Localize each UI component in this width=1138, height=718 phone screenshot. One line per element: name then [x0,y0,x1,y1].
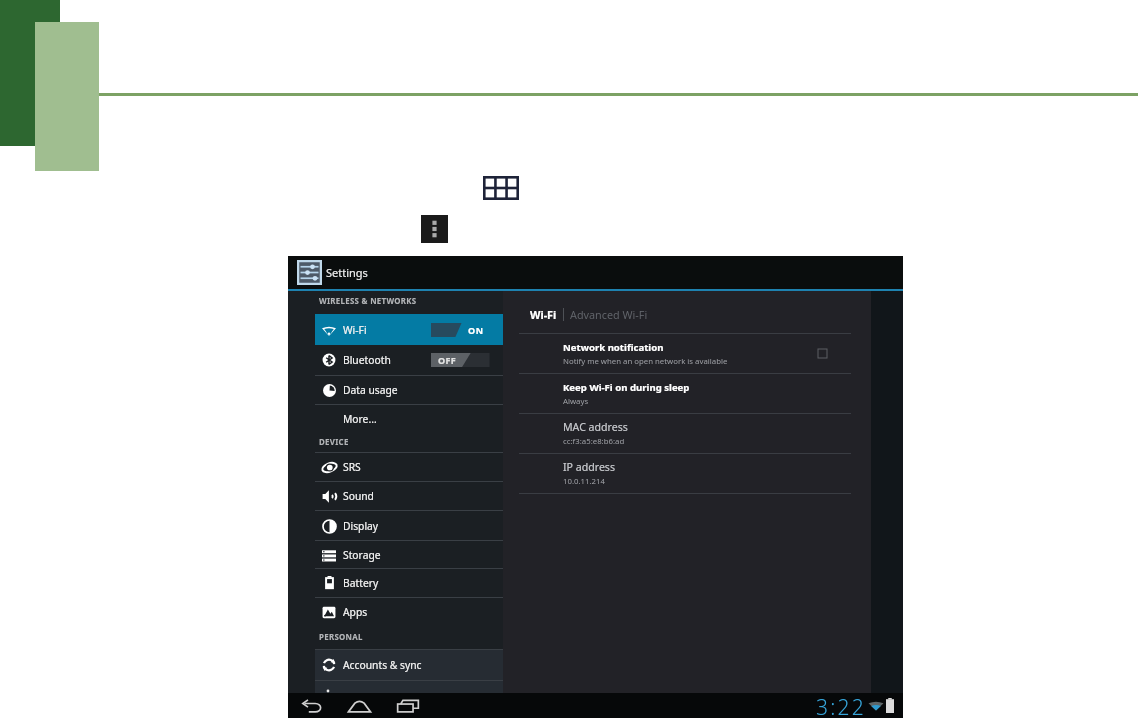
button[interactable]: Accounts & sync [315,650,503,680]
staticText: WIRELESS & NETWORKS [319,296,417,307]
button[interactable]: Display [315,511,503,540]
staticText: More... [343,412,377,426]
button[interactable]: Data usage [315,376,503,404]
staticText: ON [468,324,484,336]
staticText: cc:f3:a5:e8:b6:ad [563,436,625,447]
staticText: 10.0.11.214 [563,476,605,487]
staticText: Storage [343,548,381,562]
staticText: DEVICE [319,437,349,448]
staticText: SRS [343,460,361,474]
staticText: Wi-Fi [343,323,367,337]
button[interactable]: More options [421,215,448,243]
staticText: IP address [563,460,616,474]
staticText: Battery [343,576,379,590]
staticText: Always [563,396,589,407]
button[interactable]: Settings [297,260,322,285]
button[interactable]: SRS [315,453,503,481]
staticText: MAC address [563,420,628,434]
staticText: Bluetooth [343,353,391,367]
staticText: PERSONAL [319,632,363,643]
staticText: Advanced Wi-Fi [570,307,648,322]
button[interactable]: Network notification [503,334,871,373]
staticText: Display [343,519,379,533]
button[interactable]: Recent apps [396,696,419,716]
button[interactable]: Storage [315,541,503,568]
button[interactable]: Battery [315,569,503,597]
staticText: Sound [343,489,374,503]
staticText: Settings [326,265,368,280]
button[interactable]: IP address [503,454,871,493]
staticText: Notify me when an open network is availa… [563,356,728,367]
button[interactable]: Apps grid [483,176,519,200]
button[interactable]: Sound [315,482,503,510]
staticText: 3:22 [816,693,866,718]
button[interactable]: Keep Wi-Fi on during sleep [503,374,871,413]
staticText: OFF [438,354,457,366]
button[interactable]: Back [301,696,323,716]
staticText: Accounts & sync [343,658,422,672]
button[interactable]: Bluetooth [315,345,503,375]
staticText: Data usage [343,383,398,397]
button[interactable]: Apps [315,598,503,626]
staticText: Keep Wi-Fi on during sleep [563,381,690,394]
button[interactable]: Home [347,696,371,716]
button[interactable]: Wi-Fi [315,314,503,345]
staticText: Wi-Fi [530,307,557,322]
button[interactable]: MAC address [503,414,871,453]
button[interactable]: More... [315,405,503,433]
staticText: Apps [343,605,368,619]
staticText: Network notification [563,341,664,354]
